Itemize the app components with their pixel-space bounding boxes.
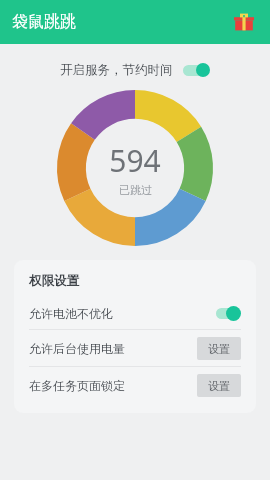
button[interactable]: 开启服务，节约时间 bbox=[0, 58, 270, 82]
staticText: 在多任务页面锁定 bbox=[29, 378, 125, 393]
button[interactable]: 允许电池不优化 bbox=[14, 297, 256, 329]
staticText: 袋鼠跳跳 bbox=[12, 12, 76, 32]
staticText: 已跳过 bbox=[119, 183, 152, 197]
button[interactable]: 设置 bbox=[197, 374, 241, 397]
staticText: 设置 bbox=[208, 342, 230, 356]
staticText: 开启服务，节约时间 bbox=[60, 62, 173, 78]
staticText: 594 bbox=[109, 140, 161, 181]
button[interactable]: Gift bbox=[230, 8, 258, 36]
staticText: 设置 bbox=[208, 379, 230, 393]
staticText: 权限设置 bbox=[29, 273, 79, 289]
staticText: 允许后台使用电量 bbox=[29, 341, 125, 356]
staticText: 允许电池不优化 bbox=[29, 306, 113, 321]
button[interactable]: 设置 bbox=[197, 337, 241, 360]
